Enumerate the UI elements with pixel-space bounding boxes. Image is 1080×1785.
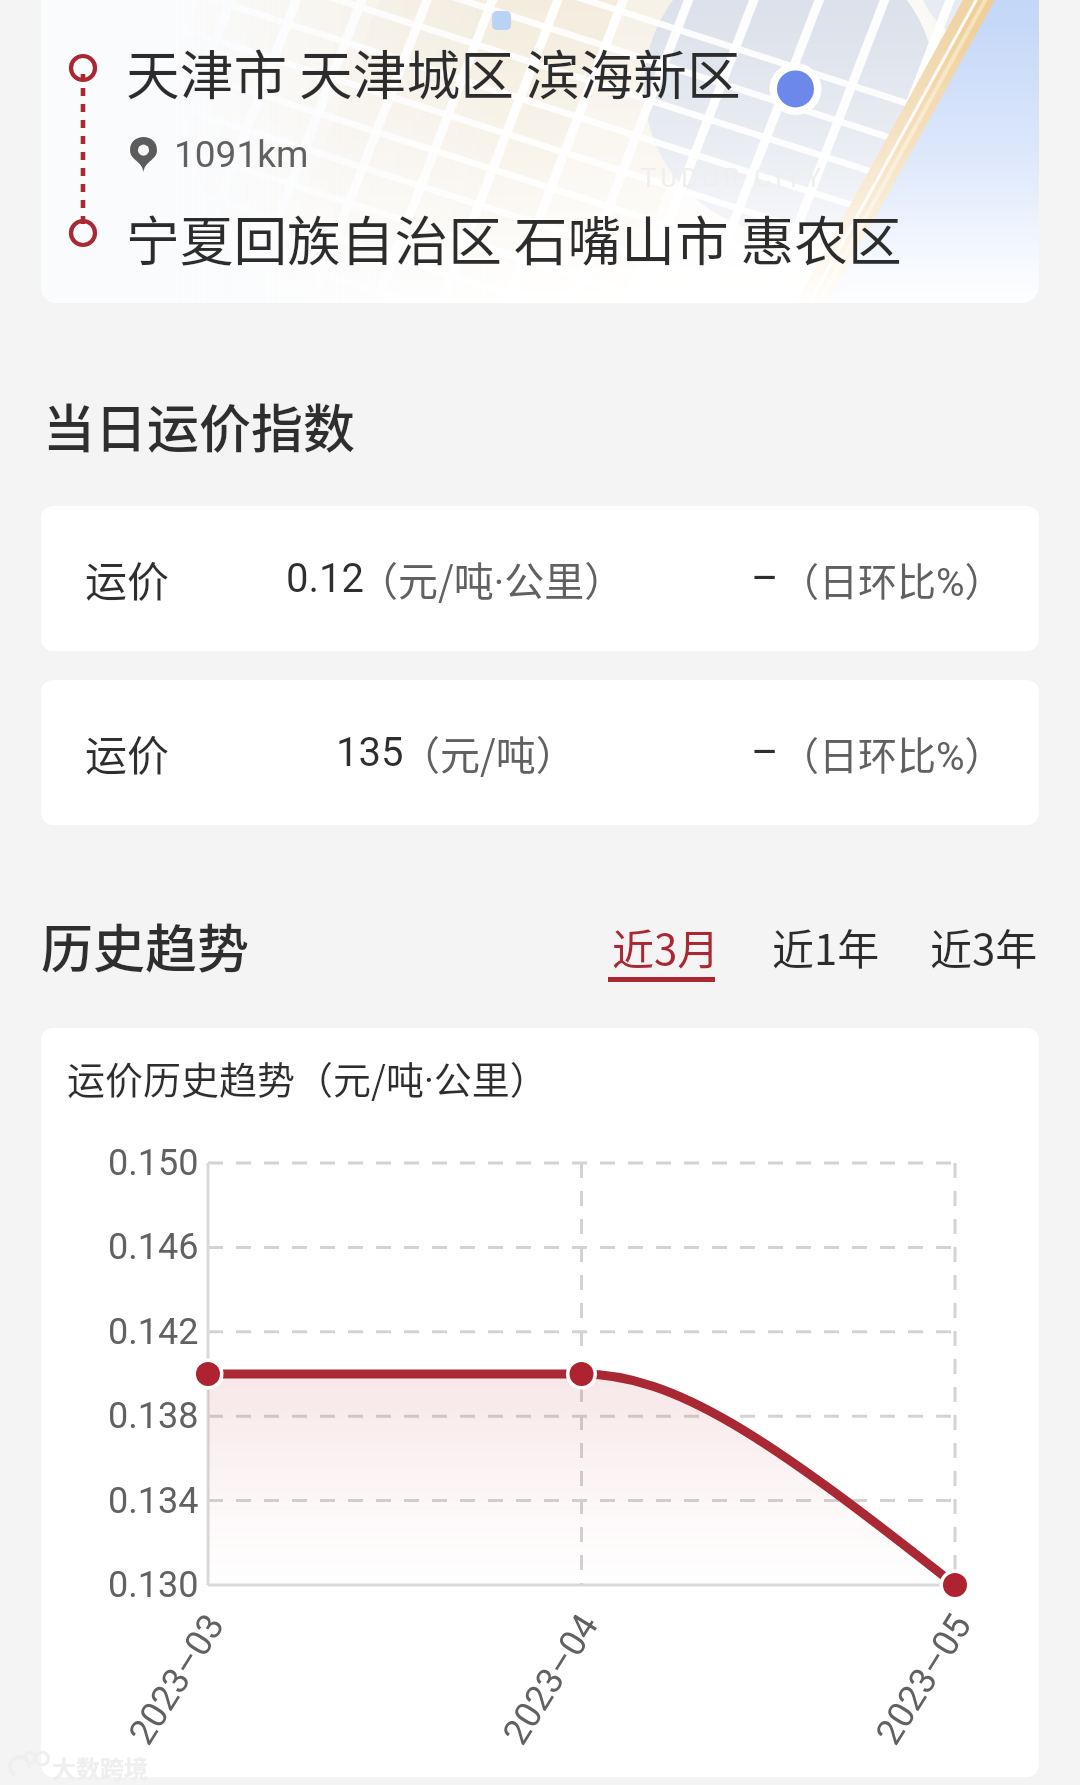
staticText: 0.146	[108, 1226, 199, 1268]
staticText: –	[751, 728, 779, 777]
staticText: 近1年	[772, 916, 880, 977]
staticText: 运价历史趋势（元/吨·公里）	[67, 1050, 548, 1105]
staticText: 2023–03	[120, 1606, 233, 1752]
staticText: 近3年	[930, 916, 1038, 977]
staticText: 0.142	[108, 1311, 199, 1353]
staticText: （元/吨）	[400, 724, 576, 782]
staticText: 当日运价指数	[43, 388, 356, 463]
button[interactable]: 近3月	[598, 902, 732, 1000]
staticText: （元/吨·公里）	[358, 550, 625, 608]
staticText: 大数跨境	[52, 1750, 148, 1785]
button[interactable]: 运价	[41, 680, 1039, 825]
staticText: 运价	[85, 548, 170, 609]
staticText: TUDOR CITY	[641, 164, 826, 193]
staticText: 宁夏回族自治区 石嘴山市 惠农区	[126, 199, 902, 277]
button[interactable]: 运价	[41, 506, 1039, 651]
staticText: –	[751, 554, 779, 603]
staticText: 1091km	[174, 133, 309, 176]
staticText: 0.150	[108, 1142, 199, 1184]
staticText: 历史趋势	[41, 908, 250, 983]
staticText: （日环比%）	[780, 551, 1004, 607]
staticText: 天津市 天津城区 滨海新区	[126, 33, 741, 111]
button[interactable]: TUDOR CITY	[41, 0, 1039, 303]
button[interactable]: 近3年	[916, 902, 1050, 1000]
staticText: 0.12	[286, 555, 364, 602]
staticText: 2023–04	[494, 1606, 607, 1752]
staticText: （日环比%）	[780, 725, 1004, 781]
staticText: 2023–05	[867, 1606, 980, 1752]
staticText: 135	[336, 729, 404, 776]
staticText: 0.134	[108, 1480, 199, 1522]
button[interactable]: 近1年	[758, 902, 892, 1000]
staticText: 0.130	[108, 1564, 199, 1606]
staticText: 0.138	[108, 1395, 199, 1437]
staticText: 运价	[85, 722, 170, 783]
staticText: 近3月	[612, 916, 720, 977]
